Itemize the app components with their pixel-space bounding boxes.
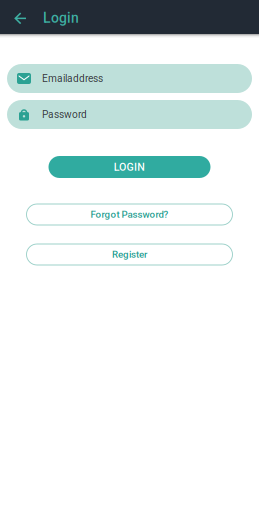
staticText: Forgot Password? [90, 209, 168, 220]
staticText: Password [42, 109, 87, 120]
button[interactable]: Back [6, 0, 35, 34]
staticText: LOGIN [114, 161, 145, 173]
staticText: Register [112, 249, 147, 260]
button[interactable]: Register [26, 244, 232, 265]
staticText: Emailaddress [42, 73, 103, 84]
button[interactable]: Password [7, 100, 252, 129]
button[interactable]: LOGIN [48, 156, 210, 178]
button[interactable]: Emailaddress [7, 64, 252, 93]
button[interactable]: Forgot Password? [26, 204, 232, 225]
staticText: Login [43, 10, 79, 26]
